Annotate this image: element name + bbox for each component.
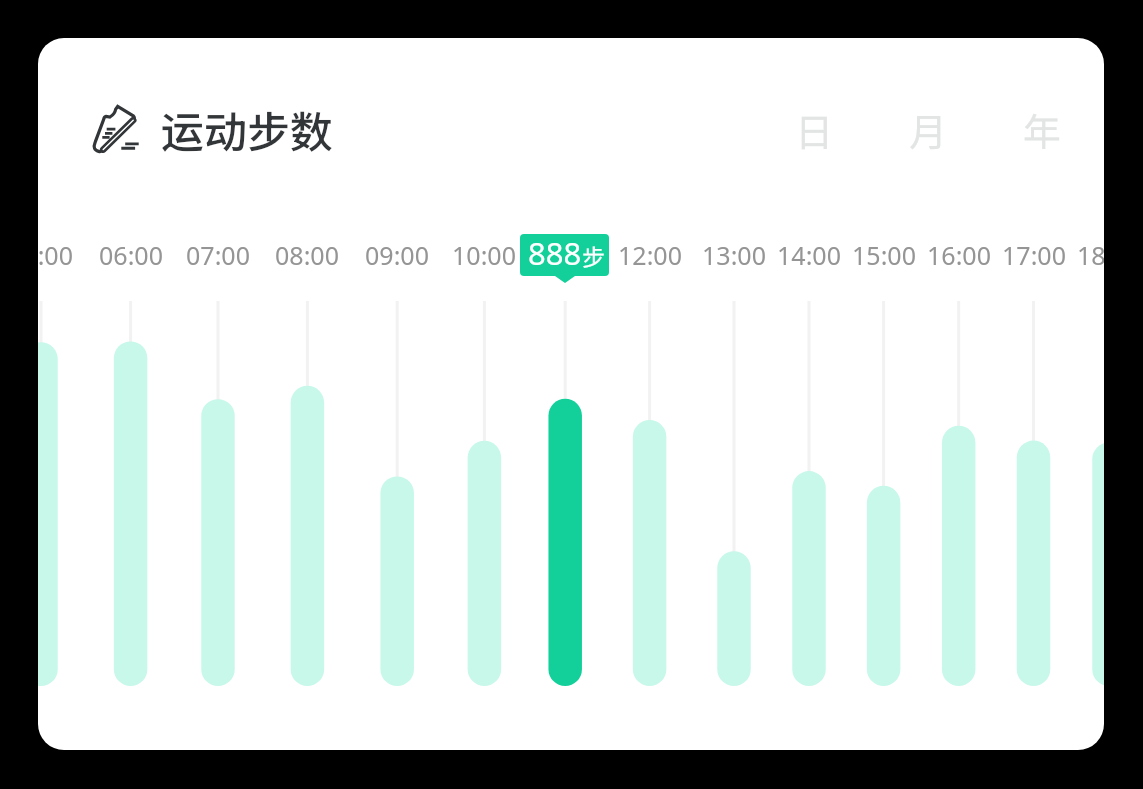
button[interactable]: 09:00 xyxy=(352,238,442,272)
staticText: 月 xyxy=(909,102,948,157)
staticText: 步 xyxy=(582,239,605,272)
staticText: 14:00 xyxy=(777,238,841,272)
button[interactable]: 日 xyxy=(757,97,871,161)
staticText: 05:00 xyxy=(38,238,73,272)
staticText: 13:00 xyxy=(702,238,766,272)
button[interactable]: 年 xyxy=(985,97,1099,161)
staticText: 11:00 xyxy=(533,238,597,272)
staticText: 年 xyxy=(1023,102,1062,157)
staticText: 日 xyxy=(795,102,834,157)
button[interactable]: 15:00 xyxy=(839,238,929,272)
staticText: 15:00 xyxy=(852,238,916,272)
button[interactable]: 888 xyxy=(520,234,609,276)
button[interactable]: 07:00 xyxy=(173,238,263,272)
button[interactable]: 11:00 xyxy=(520,238,610,272)
button[interactable]: 05:00 xyxy=(38,238,86,272)
button[interactable]: 月 xyxy=(871,97,985,161)
button[interactable]: 14:00 xyxy=(764,238,854,272)
button[interactable]: 08:00 xyxy=(262,238,352,272)
button[interactable]: 12:00 xyxy=(605,238,695,272)
staticText: 08:00 xyxy=(275,238,339,272)
button[interactable]: 18:00 xyxy=(1064,238,1104,272)
staticText: 16:00 xyxy=(927,238,991,272)
button[interactable]: 06:00 xyxy=(86,238,176,272)
staticText: 12:00 xyxy=(618,238,682,272)
staticText: 18:00 xyxy=(1077,238,1104,272)
button[interactable]: Running steps xyxy=(85,95,337,159)
staticText: 09:00 xyxy=(365,238,429,272)
button[interactable]: 16:00 xyxy=(914,238,1004,272)
staticText: 17:00 xyxy=(1002,238,1066,272)
button[interactable]: 17:00 xyxy=(989,238,1079,272)
staticText: 06:00 xyxy=(99,238,163,272)
other: Running steps xyxy=(89,101,145,157)
button[interactable]: 10:00 xyxy=(439,238,529,272)
staticText: 07:00 xyxy=(186,238,250,272)
staticText: 运动步数 xyxy=(161,98,333,160)
button[interactable]: 13:00 xyxy=(689,238,779,272)
staticText: 10:00 xyxy=(452,238,516,272)
staticText: 888 xyxy=(528,234,582,274)
